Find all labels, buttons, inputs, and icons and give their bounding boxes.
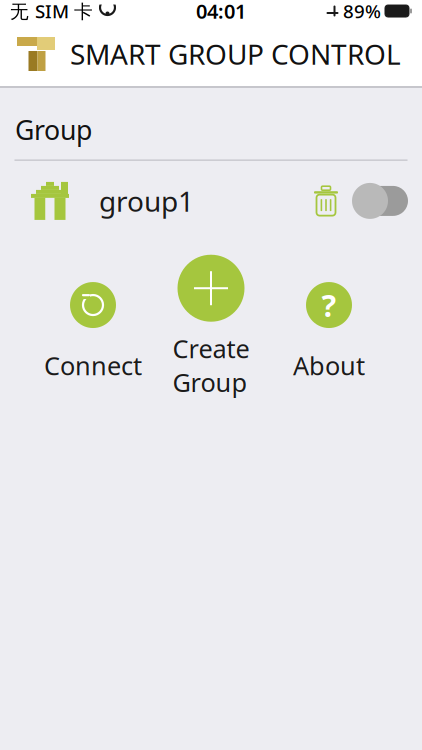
staticText: About [293, 348, 365, 382]
button[interactable]: Connect [34, 271, 152, 382]
button[interactable]: Create Group [152, 255, 270, 399]
button[interactable]: group1 [0, 173, 422, 229]
staticText: Connect [44, 348, 142, 382]
button[interactable]: ? [270, 271, 388, 382]
staticText: group1 [99, 182, 194, 219]
staticText: 无 SIM 卡 [10, 0, 93, 23]
staticText: SMART GROUP CONTROL [70, 35, 401, 73]
staticText: 89% [343, 0, 381, 23]
staticText: ? [321, 285, 336, 325]
staticText: Create Group [172, 332, 249, 399]
staticText: Group [15, 112, 92, 147]
staticText: 04:01 [196, 0, 246, 24]
